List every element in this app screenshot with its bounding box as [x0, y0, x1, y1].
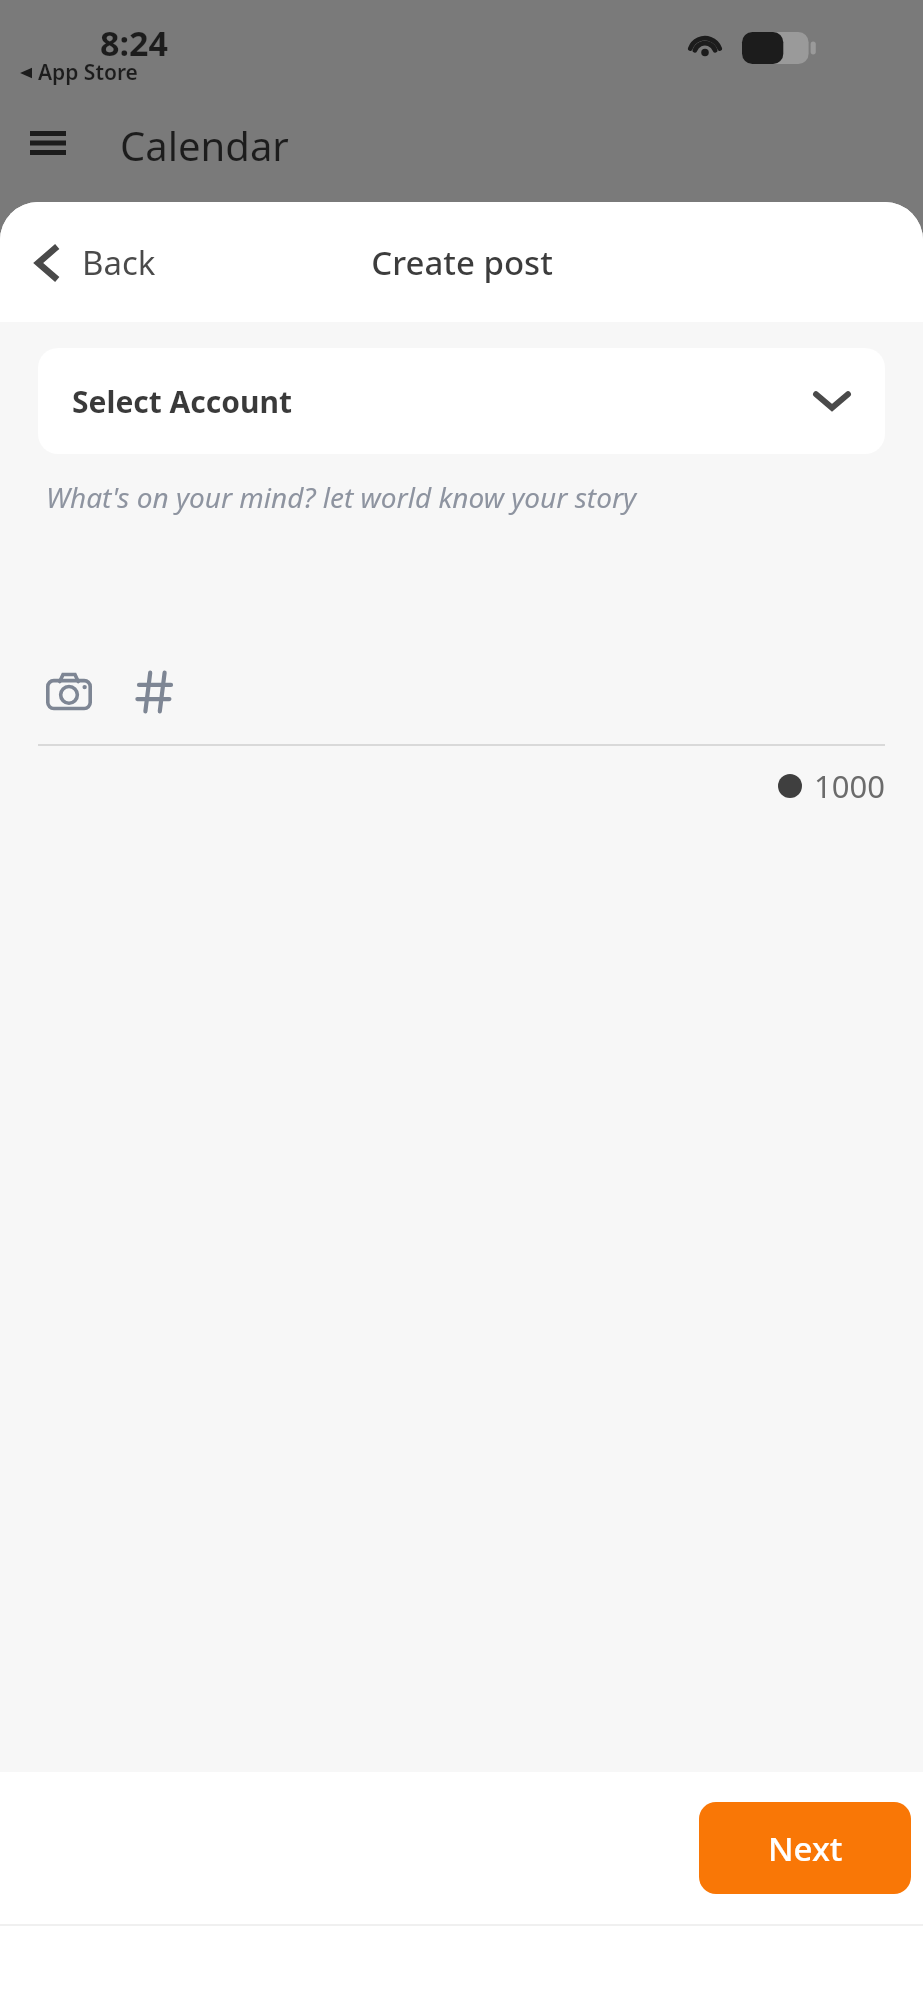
button[interactable]: What's on your mind? let world know your…: [38, 454, 885, 654]
button[interactable]: Add hashtag: [124, 661, 186, 723]
staticText: 8:24: [100, 20, 168, 66]
button[interactable]: Add photo: [38, 661, 100, 723]
staticText: App Store: [38, 58, 138, 87]
staticText: Create post: [292, 240, 632, 285]
staticText: Select Account: [72, 381, 293, 422]
staticText: What's on your mind? let world know your…: [46, 478, 637, 516]
button[interactable]: Next: [699, 1802, 911, 1894]
staticText: 1000: [814, 765, 885, 807]
staticText: Next: [768, 1826, 843, 1871]
staticText: Back: [82, 240, 156, 285]
staticText: Calendar: [120, 118, 289, 172]
button[interactable]: Select Account: [38, 348, 885, 454]
button[interactable]: Back: [24, 232, 166, 293]
